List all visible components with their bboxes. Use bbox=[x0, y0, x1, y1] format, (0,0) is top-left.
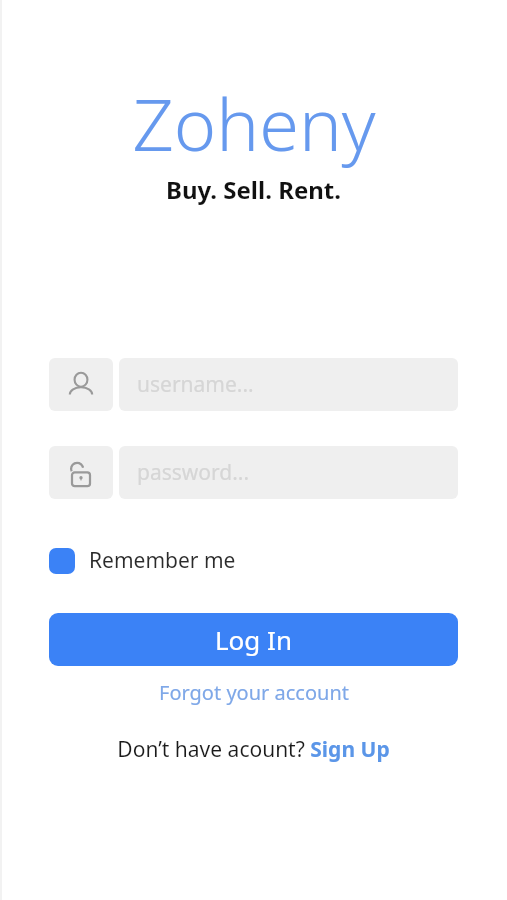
button[interactable]: Log In bbox=[49, 613, 458, 666]
staticText: username... bbox=[137, 370, 254, 399]
staticText: Forgot your account bbox=[159, 679, 349, 706]
staticText: Zoheny bbox=[132, 74, 376, 172]
staticText: Remember me bbox=[89, 546, 236, 575]
button[interactable]: Don’t have acount? Sign Up bbox=[49, 735, 458, 764]
staticText: password... bbox=[137, 458, 250, 487]
staticText: Buy. Sell. Rent. bbox=[166, 173, 341, 206]
button[interactable]: Forgot your account bbox=[49, 679, 458, 706]
staticText: Log In bbox=[215, 622, 292, 657]
button[interactable]: Remember me bbox=[49, 546, 244, 575]
button[interactable]: username... bbox=[49, 358, 458, 411]
staticText: Don’t have acount? Sign Up bbox=[117, 735, 390, 764]
button[interactable]: password... bbox=[49, 446, 458, 499]
